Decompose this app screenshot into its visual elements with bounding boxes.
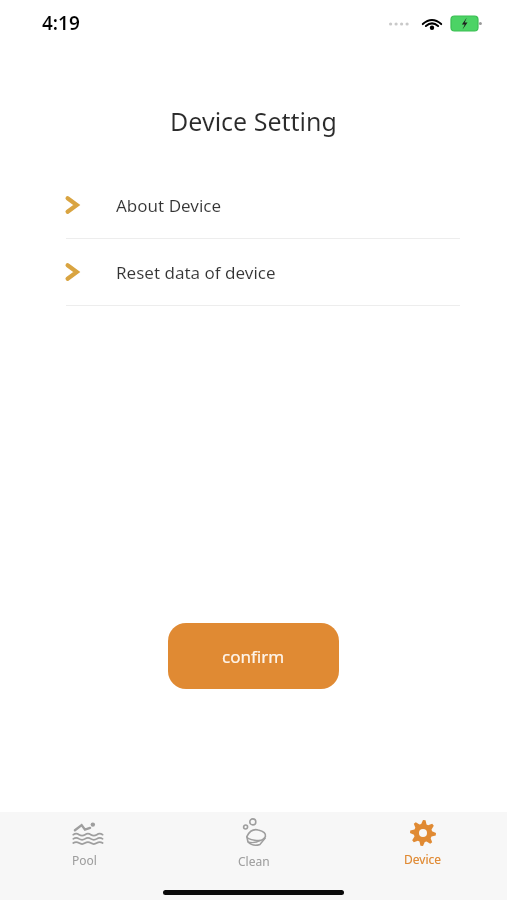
button[interactable]: confirm [168, 623, 339, 689]
staticText: Device [404, 851, 442, 867]
other: Device settings [410, 820, 436, 846]
staticText: Device Setting [0, 104, 507, 138]
button[interactable]: Reset data of device [0, 239, 507, 305]
button[interactable]: Pool [0, 812, 169, 874]
staticText: Pool [72, 852, 97, 868]
staticText: Clean [238, 853, 270, 869]
other: Clean [239, 818, 269, 848]
button[interactable]: About Device [0, 172, 507, 238]
staticText: About Device [116, 194, 222, 217]
button[interactable]: Clean [169, 812, 338, 874]
staticText: 4:19 [42, 10, 80, 36]
staticText: Reset data of device [116, 261, 276, 284]
other: Pool [71, 819, 99, 847]
button[interactable]: Device settings [338, 812, 507, 874]
staticText: confirm [222, 645, 285, 668]
